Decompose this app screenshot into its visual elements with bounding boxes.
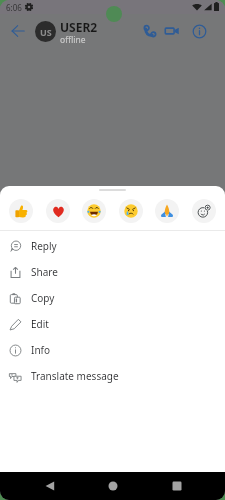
- button[interactable]: Video call: [159, 18, 185, 44]
- staticText: Info: [31, 343, 51, 357]
- button[interactable]: Recent apps: [172, 481, 182, 491]
- staticText: Translate message: [31, 369, 119, 383]
- button[interactable]: Info: [0, 337, 225, 363]
- button[interactable]: Edit: [0, 311, 225, 337]
- button[interactable]: Copy: [0, 285, 225, 311]
- staticText: US: [40, 26, 52, 38]
- button[interactable]: Sad reaction: [119, 199, 143, 223]
- staticText: Edit: [31, 317, 49, 331]
- button[interactable]: Laughing reaction: [82, 199, 106, 223]
- button[interactable]: Heart reaction: [46, 199, 70, 223]
- staticText: Copy: [31, 291, 55, 305]
- button[interactable]: Thumbs up reaction: [9, 199, 33, 223]
- button[interactable]: Reply: [0, 233, 225, 259]
- staticText: Share: [31, 265, 58, 279]
- staticText: 6:06: [6, 2, 22, 13]
- button[interactable]: Add reaction: [192, 199, 216, 223]
- staticText: Reply: [31, 239, 57, 253]
- button[interactable]: Call: [137, 18, 163, 44]
- button[interactable]: Translate message: [0, 363, 225, 389]
- button[interactable]: Home: [108, 481, 118, 491]
- button[interactable]: Info: [186, 18, 212, 44]
- staticText: USER2: [60, 19, 98, 35]
- button[interactable]: Back: [5, 18, 31, 44]
- button[interactable]: Back: [45, 481, 55, 491]
- button[interactable]: Praying reaction: [155, 199, 179, 223]
- staticText: offline: [60, 34, 86, 46]
- button[interactable]: Share: [0, 259, 225, 285]
